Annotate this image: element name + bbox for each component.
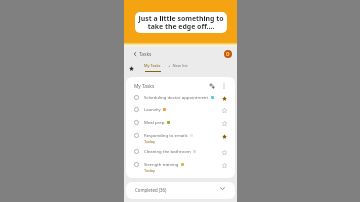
button[interactable]: Completed (36)	[126, 182, 235, 199]
staticText: My Tasks	[134, 83, 155, 90]
staticText: Strength training	[144, 161, 179, 167]
button[interactable]: Scheduling doctor appointment	[126, 92, 235, 105]
staticText: Today	[144, 139, 156, 144]
staticText: Laundry	[144, 106, 161, 112]
button[interactable]: Starred	[126, 63, 136, 73]
staticText: Scheduling doctor appointment	[144, 94, 209, 100]
button[interactable]: Laundry	[126, 104, 235, 117]
button[interactable]: Cleaning the bathroom	[126, 146, 235, 159]
staticText: O	[226, 51, 230, 57]
button[interactable]: Meal prep	[126, 117, 235, 130]
staticText: + New list	[168, 63, 188, 69]
staticText: Cleaning the bathroom	[144, 148, 191, 154]
staticText: Today	[144, 168, 156, 173]
staticText: Tasks	[139, 51, 152, 58]
staticText: My Tasks	[144, 63, 161, 68]
button[interactable]: Back	[129, 48, 140, 59]
staticText: Meal prep	[144, 119, 165, 125]
button[interactable]: More options	[219, 81, 229, 91]
staticText: Responding to emails	[144, 132, 188, 138]
button[interactable]: Account	[224, 50, 232, 58]
button[interactable]: + New list	[166, 63, 190, 69]
button[interactable]: Sort	[207, 81, 217, 91]
button[interactable]: Responding to emails	[126, 130, 235, 147]
staticText: Just a little something to take the edge…	[135, 14, 227, 31]
staticText: Completed (36)	[135, 187, 167, 193]
button[interactable]: Strength training	[126, 159, 235, 176]
button[interactable]: My Tasks	[142, 63, 163, 72]
